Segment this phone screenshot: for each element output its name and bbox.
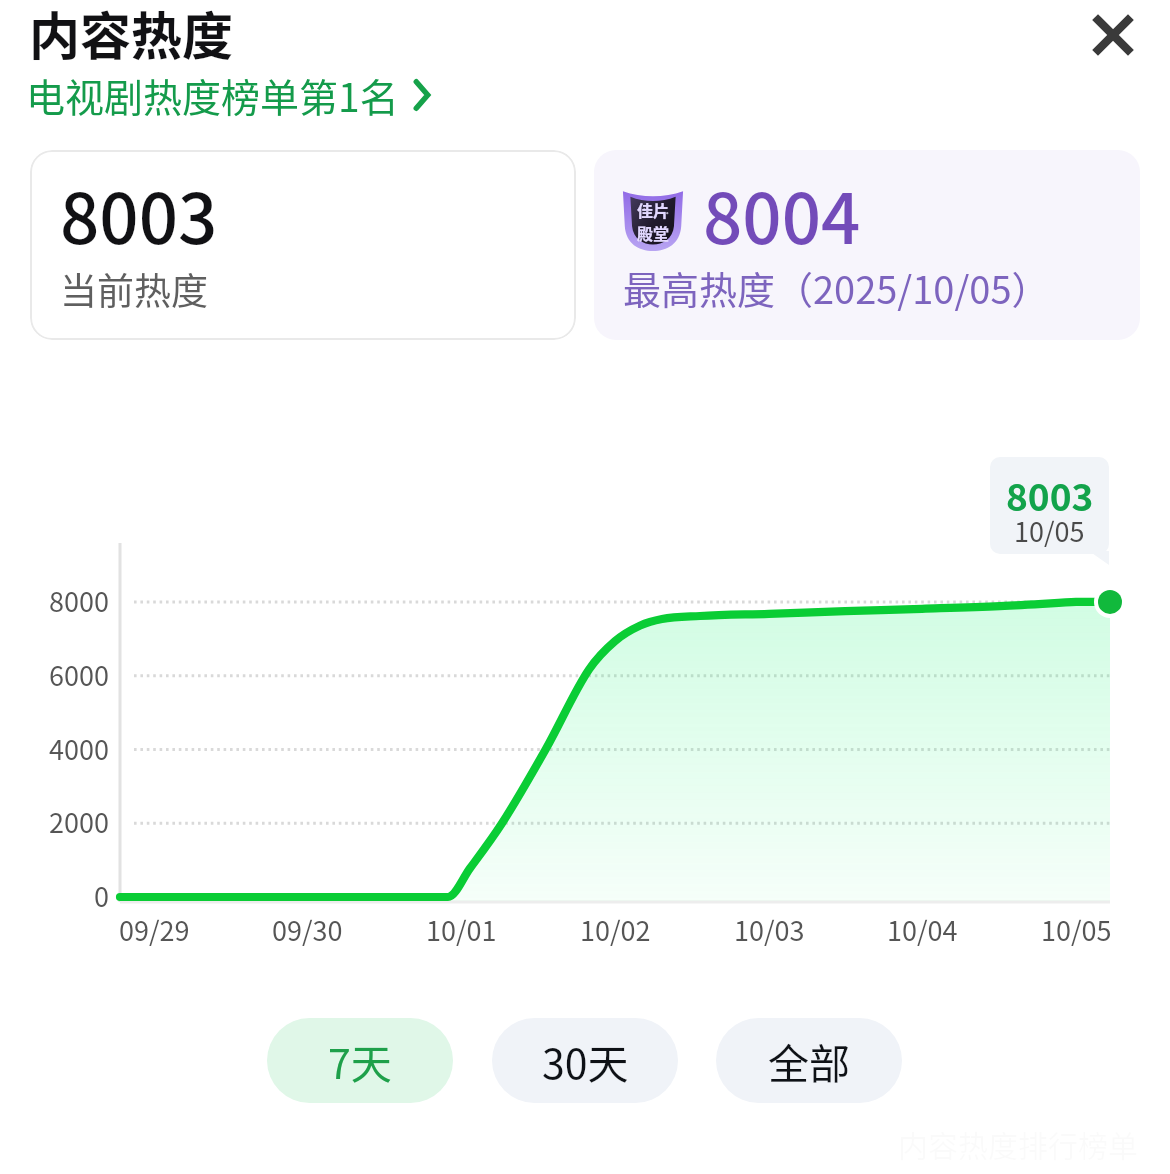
button[interactable]: 8003: [30, 150, 576, 340]
staticText: 10/03: [734, 910, 805, 946]
staticText: 最高热度（2025/10/05）: [623, 260, 1050, 315]
button[interactable]: Close: [1065, 0, 1161, 83]
staticText: 10/05: [1041, 910, 1112, 946]
staticText: 09/29: [119, 910, 190, 946]
staticText: 8003: [60, 164, 218, 264]
staticText: 6000: [49, 655, 109, 691]
button[interactable]: 全部: [716, 1018, 902, 1103]
staticText: 电视剧热度榜单第1名: [26, 67, 399, 123]
button[interactable]: 30天: [492, 1018, 678, 1103]
staticText: 8004: [703, 164, 861, 264]
staticText: 10/04: [887, 910, 958, 946]
staticText: 全部: [768, 1031, 850, 1090]
staticText: 09/30: [272, 910, 343, 946]
staticText: 10/02: [580, 910, 651, 946]
staticText: 8000: [49, 581, 109, 617]
staticText: 2000: [49, 802, 109, 838]
staticText: 0: [94, 876, 109, 912]
staticText: 10/01: [426, 910, 497, 946]
staticText: 殿堂: [637, 221, 670, 244]
button[interactable]: 电视剧热度榜单第1名: [26, 67, 430, 123]
button[interactable]: 7天: [267, 1018, 453, 1103]
staticText: 8003: [1006, 468, 1094, 522]
staticText: 10/05: [1014, 511, 1085, 550]
staticText: 内容热度: [29, 0, 234, 70]
staticText: 4000: [49, 729, 109, 765]
staticText: 30天: [542, 1031, 629, 1090]
button[interactable]: 佳片: [594, 150, 1140, 340]
staticText: 佳片: [637, 198, 670, 221]
staticText: 7天: [328, 1031, 392, 1090]
staticText: 当前热度: [60, 262, 208, 316]
